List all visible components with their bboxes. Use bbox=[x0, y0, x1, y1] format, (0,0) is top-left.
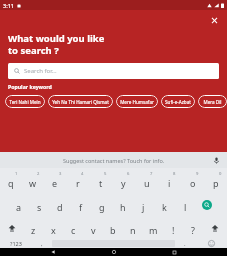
staticText: . bbox=[184, 240, 186, 248]
button[interactable]: 1 bbox=[0, 170, 22, 192]
button[interactable]: Yeh Na Thi Hamari Qismat bbox=[48, 95, 113, 108]
button[interactable]: 0 bbox=[204, 170, 227, 192]
button[interactable]: n bbox=[123, 217, 143, 239]
button[interactable]: 5 bbox=[89, 170, 112, 192]
button[interactable]: z bbox=[23, 217, 43, 239]
button[interactable]: Shift bbox=[0, 216, 23, 239]
button[interactable]: h bbox=[112, 194, 133, 216]
staticText: Popular keyword bbox=[8, 83, 52, 90]
staticText: Suggest contact names? Touch for info. bbox=[63, 157, 165, 164]
staticText: w bbox=[29, 177, 37, 189]
button[interactable]: . bbox=[175, 239, 195, 248]
staticText: s bbox=[37, 201, 42, 213]
staticText: Yeh Na Thi Hamari Qismat bbox=[52, 99, 109, 105]
staticText: v bbox=[91, 224, 96, 236]
button[interactable]: ?123 bbox=[0, 239, 32, 248]
button[interactable]: Sufi-e-Azbat bbox=[161, 95, 195, 108]
staticText: Sufi-e-Azbat bbox=[165, 99, 191, 105]
staticText: r bbox=[76, 177, 80, 189]
button[interactable]: 3 bbox=[44, 170, 66, 192]
staticText: 8 bbox=[173, 171, 176, 177]
button[interactable]: Back bbox=[46, 248, 60, 256]
button[interactable]: Emoji bbox=[195, 239, 227, 248]
staticText: q bbox=[8, 177, 14, 189]
button[interactable]: Recents bbox=[167, 248, 181, 256]
button[interactable]: Close bbox=[207, 13, 221, 27]
staticText: n bbox=[130, 224, 136, 236]
staticText: Search for... bbox=[24, 67, 57, 75]
button[interactable]: a bbox=[9, 194, 29, 216]
button[interactable]: 4 bbox=[66, 170, 89, 192]
button[interactable]: f bbox=[70, 194, 91, 216]
staticText: Mera Dil Ye Pukare bbox=[202, 99, 223, 105]
button[interactable]: 9 bbox=[181, 170, 204, 192]
staticText: 4 bbox=[81, 171, 84, 177]
button[interactable]: Teri Nahi Mein bbox=[5, 95, 45, 108]
staticText: f bbox=[79, 201, 83, 213]
button[interactable]: l bbox=[175, 194, 196, 216]
staticText: t bbox=[99, 177, 103, 189]
staticText: k bbox=[162, 201, 167, 213]
staticText: 5 bbox=[104, 171, 107, 177]
staticText: i bbox=[168, 177, 171, 189]
button[interactable]: ? bbox=[183, 217, 203, 239]
staticText: b bbox=[110, 224, 116, 236]
button[interactable]: , bbox=[32, 239, 52, 248]
staticText: x bbox=[51, 224, 56, 236]
button[interactable]: c bbox=[63, 217, 83, 239]
staticText: ? bbox=[191, 224, 195, 236]
button[interactable]: k bbox=[154, 194, 175, 216]
button[interactable]: j bbox=[133, 194, 154, 216]
staticText: j bbox=[142, 201, 145, 213]
button[interactable]: 2 bbox=[22, 170, 44, 192]
staticText: e bbox=[52, 177, 58, 189]
button[interactable]: Mere Humsafar bbox=[116, 95, 158, 108]
staticText: d bbox=[57, 201, 63, 213]
staticText: m bbox=[149, 224, 158, 236]
staticText: What would you like to search ? bbox=[8, 32, 105, 57]
button[interactable]: ! bbox=[163, 217, 183, 239]
staticText: g bbox=[99, 201, 105, 213]
staticText: 3:11 bbox=[3, 2, 14, 9]
staticText: y bbox=[121, 177, 126, 189]
staticText: 1 bbox=[15, 171, 18, 177]
staticText: ! bbox=[172, 224, 175, 236]
button[interactable]: 6 bbox=[112, 170, 135, 192]
staticText: z bbox=[31, 224, 36, 236]
staticText: u bbox=[144, 177, 150, 189]
button[interactable]: d bbox=[49, 194, 70, 216]
staticText: 2 bbox=[37, 171, 40, 177]
staticText: , bbox=[41, 240, 43, 248]
button[interactable]: m bbox=[143, 217, 163, 239]
staticText: 9 bbox=[196, 171, 199, 177]
button[interactable]: Voice input bbox=[210, 154, 222, 166]
button[interactable]: Search for... bbox=[8, 63, 219, 79]
staticText: 6 bbox=[127, 171, 130, 177]
staticText: o bbox=[190, 177, 196, 189]
button[interactable]: Home bbox=[107, 248, 121, 256]
staticText: 0 bbox=[219, 171, 222, 177]
button[interactable]: s bbox=[29, 194, 49, 216]
staticText: l bbox=[184, 201, 187, 213]
button[interactable]: v bbox=[83, 217, 103, 239]
button[interactable]: 7 bbox=[135, 170, 158, 192]
staticText: 3 bbox=[59, 171, 62, 177]
button[interactable]: x bbox=[43, 217, 63, 239]
button[interactable]: Backspace bbox=[203, 216, 227, 239]
staticText: ?123 bbox=[10, 240, 22, 247]
staticText: a bbox=[16, 201, 22, 213]
staticText: p bbox=[213, 177, 219, 189]
staticText: c bbox=[71, 224, 76, 236]
button[interactable]: g bbox=[91, 194, 112, 216]
staticText: 7 bbox=[150, 171, 153, 177]
staticText: Mere Humsafar bbox=[120, 99, 154, 105]
button[interactable]: Mera Dil Ye Pukare bbox=[198, 95, 227, 108]
button[interactable]: Search bbox=[196, 193, 217, 216]
button[interactable]: b bbox=[103, 217, 123, 239]
staticText: Teri Nahi Mein bbox=[9, 99, 41, 105]
staticText: h bbox=[120, 201, 126, 213]
button[interactable]: 8 bbox=[158, 170, 181, 192]
